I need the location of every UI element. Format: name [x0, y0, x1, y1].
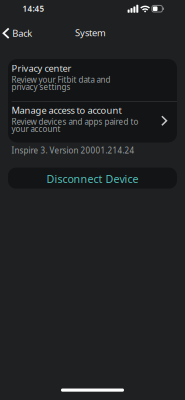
button[interactable]: Disconnect Device: [8, 168, 177, 189]
staticText: Manage access to account: [12, 104, 122, 116]
staticText: Review devices and apps paired to: [12, 116, 139, 127]
button[interactable]: Back: [0, 26, 32, 39]
staticText: 14:45: [22, 3, 44, 14]
button[interactable]: Privacy center: [8, 59, 177, 101]
button[interactable]: Manage access to account: [8, 102, 177, 142]
staticText: Privacy center: [12, 62, 72, 74]
staticText: Inspire 3. Version 20001.214.24: [12, 145, 135, 156]
staticText: Back: [12, 27, 32, 39]
staticText: your account: [12, 123, 61, 134]
staticText: privacy settings: [12, 81, 71, 92]
staticText: Review your Fitbit data and: [12, 74, 111, 85]
staticText: System: [75, 27, 106, 39]
staticText: Disconnect Device: [46, 172, 138, 186]
